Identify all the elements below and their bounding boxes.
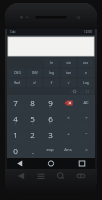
staticText: %: [49, 105, 52, 109]
staticText: √: [67, 81, 70, 85]
button[interactable]: Home: [44, 158, 58, 169]
staticText: 6: [48, 113, 53, 124]
button[interactable]: Back: [13, 158, 27, 169]
button[interactable]: exp: [41, 142, 59, 158]
staticText: 3: [48, 129, 53, 140]
staticText: ": [32, 137, 34, 141]
button[interactable]: DEG: [9, 69, 25, 77]
staticText: 9: [48, 97, 53, 108]
button[interactable]: Ans: [59, 142, 77, 158]
button[interactable]: AC: [77, 95, 95, 110]
button[interactable]: log: [44, 69, 59, 77]
staticText: exp: [46, 147, 54, 153]
button[interactable]: 8: [24, 95, 41, 110]
button[interactable]: ( ): [80, 89, 94, 94]
button[interactable]: History: [70, 89, 79, 94]
staticText: tan: [66, 71, 71, 75]
button[interactable]: [8, 37, 94, 56]
staticText: sin: [66, 61, 71, 65]
button[interactable]: Log: [78, 79, 93, 87]
button[interactable]: Rad: [9, 79, 25, 87]
staticText: ~: [49, 137, 51, 141]
staticText: log: [49, 71, 54, 75]
staticText: AC: [83, 100, 89, 106]
button[interactable]: 6: [41, 110, 59, 126]
button[interactable]: 5: [24, 110, 41, 126]
button[interactable]: x!: [27, 79, 42, 87]
staticText: ': [15, 137, 16, 141]
button[interactable]: 2: [24, 126, 41, 142]
staticText: 2: [30, 129, 35, 140]
button[interactable]: Home: [73, 170, 89, 182]
button[interactable]: −: [77, 126, 95, 142]
button[interactable]: ×: [59, 110, 77, 126]
button[interactable]: √: [61, 79, 76, 87]
staticText: Calc: [10, 30, 16, 34]
staticText: 12:00: [84, 30, 92, 34]
button[interactable]: Delete: [59, 95, 77, 110]
staticText: 0: [13, 145, 18, 156]
staticText: =: [85, 147, 88, 153]
staticText: .: [32, 145, 34, 156]
button[interactable]: sin: [61, 59, 76, 67]
staticText: 5: [30, 113, 35, 124]
staticText: [: [15, 121, 16, 125]
button[interactable]: INV: [27, 69, 42, 77]
staticText: e: [85, 71, 87, 75]
staticText: ,: [32, 153, 33, 157]
staticText: ^: [15, 153, 17, 157]
button[interactable]: ln: [44, 59, 59, 67]
staticText: 8: [30, 97, 35, 108]
staticText: 1: [13, 129, 18, 140]
staticText: Rad: [14, 81, 20, 85]
staticText: −: [85, 131, 88, 137]
staticText: ↑: [31, 106, 34, 109]
button[interactable]: 1: [7, 126, 24, 142]
button[interactable]: Menu: [33, 170, 49, 182]
staticText: DEG: [14, 71, 21, 75]
button[interactable]: 7: [7, 95, 24, 110]
button[interactable]: 9: [41, 95, 59, 110]
staticText: +: [67, 131, 70, 137]
staticText: ×: [67, 115, 70, 121]
button[interactable]: tan: [61, 69, 76, 77]
staticText: Ans: [64, 147, 72, 153]
button[interactable]: ÷: [77, 110, 95, 126]
button[interactable]: Recents: [75, 158, 89, 169]
staticText: ( ): [86, 90, 89, 94]
button[interactable]: ∛: [44, 79, 59, 87]
button[interactable]: .: [24, 142, 41, 158]
button[interactable]: 4: [7, 110, 24, 126]
button[interactable]: cos: [78, 59, 93, 67]
button[interactable]: +: [59, 126, 77, 142]
button[interactable]: =: [77, 142, 95, 158]
staticText: INV: [32, 71, 38, 75]
staticText: ∛: [50, 81, 53, 85]
staticText: 7: [13, 97, 18, 108]
staticText: cos: [83, 61, 88, 65]
staticText: ln: [50, 61, 53, 65]
button[interactable]: 3: [41, 126, 59, 142]
staticText: Log: [83, 81, 89, 85]
staticText: x!: [33, 81, 36, 85]
staticText: #: [49, 121, 51, 125]
button[interactable]: 0: [7, 142, 24, 158]
button[interactable]: Back: [13, 170, 29, 182]
staticText: ÷: [85, 115, 88, 121]
staticText: ~: [15, 105, 17, 109]
button[interactable]: Search: [53, 170, 69, 182]
staticText: ]: [32, 121, 33, 125]
staticText: 4: [13, 113, 18, 124]
button[interactable]: e: [78, 69, 93, 77]
